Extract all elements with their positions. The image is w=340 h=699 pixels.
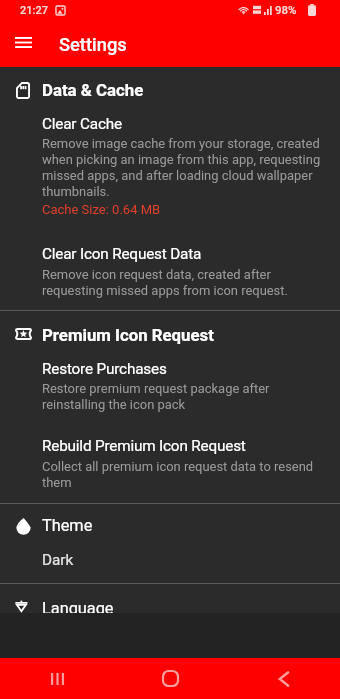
button[interactable]: Language: [0, 589, 340, 613]
staticText: 98%: [275, 3, 297, 16]
staticText: Remove icon request data, created after: [42, 267, 271, 282]
staticText: Clear Icon Request Data: [42, 245, 202, 263]
staticText: Language: [42, 599, 114, 613]
button[interactable]: Premium Icon Request: [0, 315, 340, 347]
button[interactable]: Recents: [0, 658, 114, 699]
staticText: Collect all premium icon request data to…: [42, 459, 314, 474]
staticText: requesting missed apps from icon request…: [42, 283, 288, 298]
staticText: Dark: [42, 551, 74, 569]
staticText: thumbnails.: [42, 184, 110, 199]
staticText: Theme: [42, 516, 93, 535]
button[interactable]: Back: [227, 658, 340, 699]
staticText: Premium Icon Request: [42, 325, 214, 345]
button[interactable]: Data & Cache: [0, 70, 340, 102]
staticText: when picking an image from this app, req…: [42, 152, 321, 167]
button[interactable]: Open navigation menu: [1, 22, 47, 67]
staticText: Rebuild Premium Icon Request: [42, 437, 246, 455]
button[interactable]: Home: [114, 658, 227, 699]
button[interactable]: Theme: [0, 506, 340, 564]
staticText: them: [42, 475, 72, 490]
staticText: Remove image cache from your storage, cr…: [42, 136, 320, 151]
staticText: missed apps, and after loading cloud wal…: [42, 168, 313, 183]
staticText: reinstalling the icon pack: [42, 397, 186, 412]
staticText: Clear Cache: [42, 115, 122, 133]
staticText: Settings: [59, 34, 127, 55]
staticText: Cache Size: 0.64 MB: [42, 202, 161, 217]
staticText: 21:27: [20, 4, 48, 17]
staticText: Data & Cache: [42, 80, 144, 100]
staticText: Restore premium request package after: [42, 381, 270, 396]
staticText: Restore Purchases: [42, 360, 167, 378]
